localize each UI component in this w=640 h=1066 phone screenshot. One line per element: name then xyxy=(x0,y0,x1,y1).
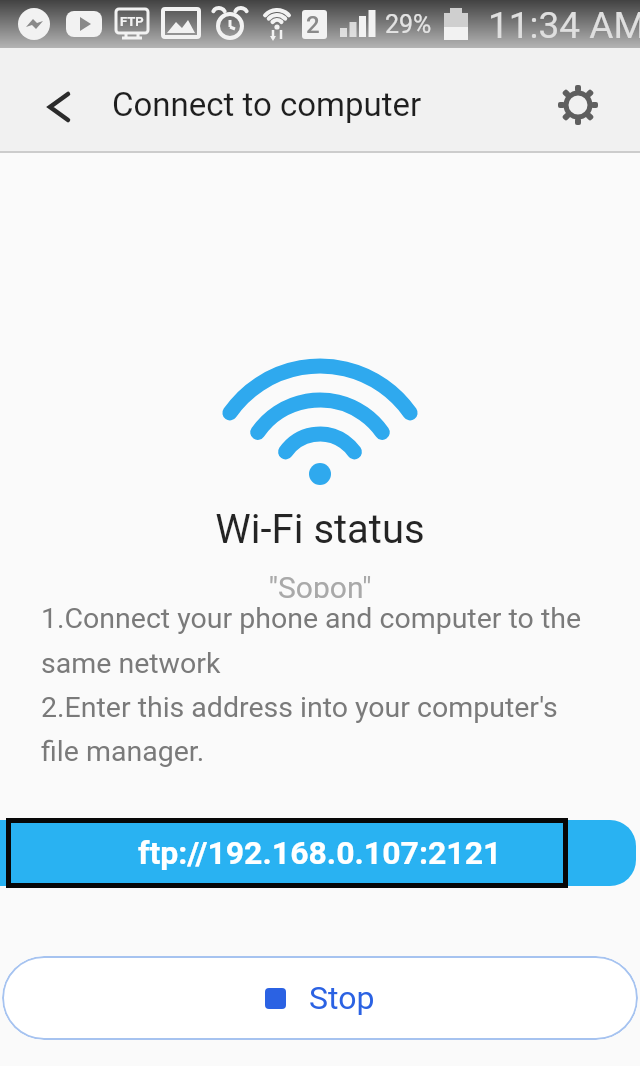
staticText: Wi-Fi status xyxy=(0,506,640,553)
button[interactable] xyxy=(558,85,598,125)
button[interactable] xyxy=(44,92,76,124)
staticText: 1.Connect your phone and computer to the… xyxy=(41,602,582,768)
staticText: "Sopon" xyxy=(0,570,640,598)
staticText: ftp://192.168.0.107:2121 xyxy=(138,834,502,872)
staticText: 11:34 AM xyxy=(488,4,640,47)
button[interactable]: Stop xyxy=(2,956,638,1040)
staticText: 29% xyxy=(385,10,432,39)
staticText: Connect to computer xyxy=(112,85,422,124)
staticText: Stop xyxy=(309,979,375,1017)
staticText: 2 xyxy=(306,11,320,39)
button[interactable] xyxy=(6,818,568,888)
staticText: FTP xyxy=(120,14,144,29)
